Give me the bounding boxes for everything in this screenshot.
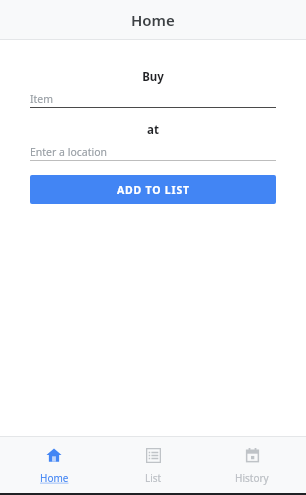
other: History xyxy=(243,446,261,464)
staticText: ADD TO LIST xyxy=(117,183,190,197)
button[interactable]: Home xyxy=(9,440,99,491)
staticText: Item xyxy=(30,92,54,106)
button[interactable]: Item xyxy=(30,91,276,108)
button[interactable]: Enter a location xyxy=(30,144,276,161)
other: Home xyxy=(45,446,63,464)
staticText: Enter a location xyxy=(30,145,108,159)
staticText: Buy xyxy=(30,69,276,85)
button[interactable]: List xyxy=(108,440,198,491)
staticText: Home xyxy=(131,10,175,30)
staticText: at xyxy=(30,122,276,138)
staticText: List xyxy=(145,471,162,485)
button[interactable]: ADD TO LIST xyxy=(30,175,276,204)
other: List xyxy=(144,446,162,464)
staticText: Home xyxy=(40,471,69,485)
staticText: History xyxy=(235,471,269,485)
button[interactable]: History xyxy=(207,440,297,491)
